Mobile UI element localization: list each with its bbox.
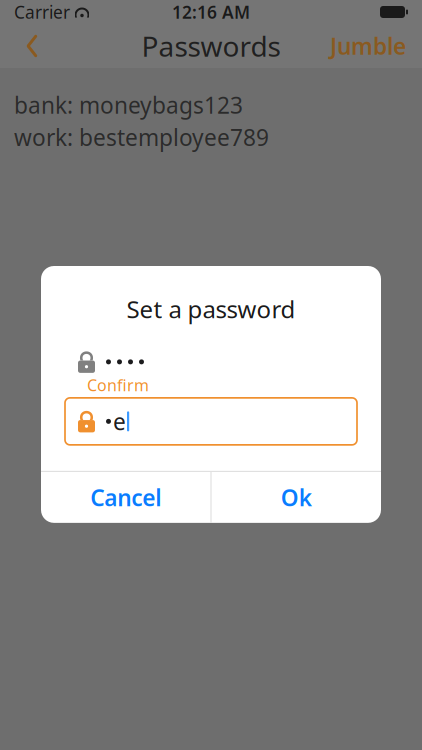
button[interactable]: Cancel	[41, 472, 210, 523]
staticText: Confirm	[87, 374, 149, 396]
staticText: Ok	[281, 482, 312, 512]
staticText: Jumble	[330, 31, 406, 61]
staticText: Cancel	[90, 482, 161, 512]
button[interactable]: Jumble	[326, 26, 410, 66]
staticText: work: bestemployee789	[14, 122, 269, 152]
button[interactable]: Back	[12, 26, 52, 66]
staticText: e	[113, 406, 126, 436]
button[interactable]: Ok	[211, 472, 381, 523]
staticText: Set a password	[126, 293, 295, 325]
staticText: 12:16 AM	[172, 0, 250, 23]
staticText: bank: moneybags123	[14, 90, 243, 120]
staticText: Passwords	[141, 27, 280, 65]
staticText: Carrier	[14, 0, 70, 23]
